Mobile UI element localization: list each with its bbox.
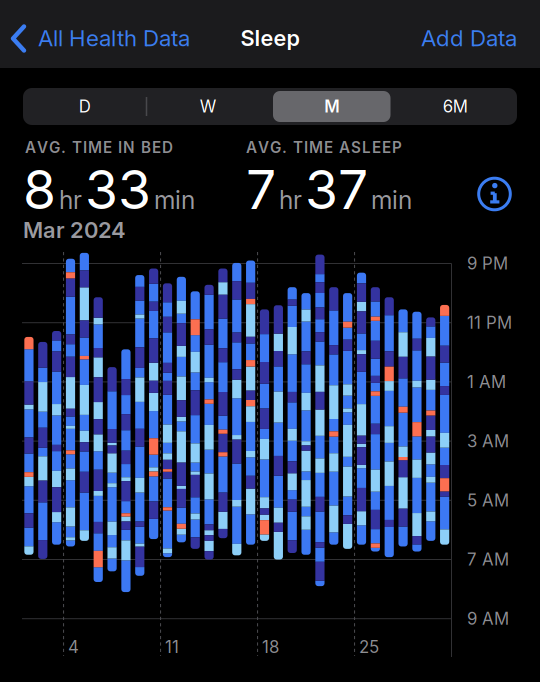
staticText: 9 AM [467,608,509,629]
staticText: 3 AM [467,431,509,451]
staticText: 5 AM [467,490,509,510]
staticText: 7 [246,157,276,222]
staticText: Mar 2024 [23,217,126,243]
staticText: 4 [68,637,79,657]
staticText: 7 AM [467,549,509,570]
staticText: A V G . T I M E I N B E D [25,138,173,157]
staticText: A V G . T I M E A S L E E P [246,138,402,157]
staticText: min [154,185,195,215]
staticText: 11 [165,637,179,657]
staticText: 11 PM [467,312,512,333]
staticText: 18 [262,637,279,657]
staticText: hr [279,185,302,215]
staticText: 9 PM [467,253,508,274]
staticText: 25 [359,637,379,657]
staticText: All Health Data [38,24,190,51]
staticText: M [324,96,339,117]
staticText: 1 AM [467,372,506,392]
staticText: 8 [23,157,56,222]
staticText: 6M [443,96,468,117]
staticText: 37 [305,157,368,222]
staticText: hr [59,185,82,215]
staticText: D [79,96,91,117]
staticText: 33 [85,157,151,222]
staticText: Add Data [421,24,517,51]
staticText: Sleep [240,25,299,51]
staticText: min [371,185,412,215]
staticText: W [200,96,217,117]
